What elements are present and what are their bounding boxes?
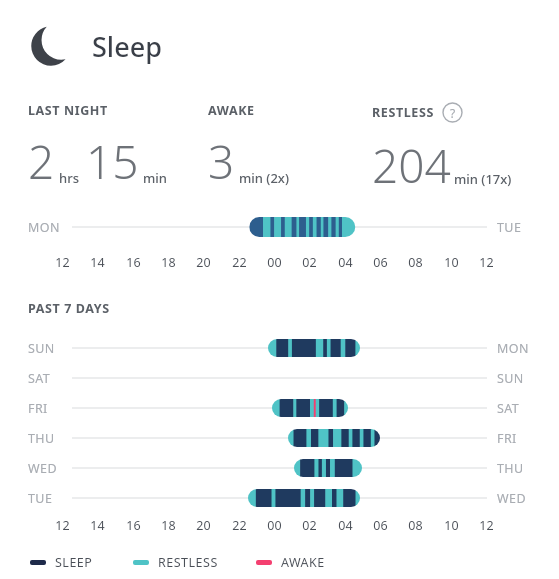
staticText: SLEEP	[55, 554, 93, 571]
staticText: 22	[232, 254, 247, 271]
staticText: 14	[90, 254, 105, 271]
staticText: SAT	[28, 370, 51, 387]
staticText: 20	[196, 517, 211, 534]
staticText: MON	[28, 219, 60, 236]
staticText: 2	[28, 130, 55, 193]
staticText: 12	[55, 517, 70, 534]
button[interactable]: MON	[0, 212, 559, 242]
staticText: min (17x)	[454, 170, 512, 188]
staticText: 10	[444, 517, 459, 534]
staticText: 16	[126, 254, 141, 271]
button[interactable]: SUN	[0, 333, 559, 363]
button[interactable]: What is restless?	[442, 102, 463, 123]
staticText: 10	[444, 254, 459, 271]
staticText: TUE	[28, 490, 53, 507]
staticText: AWAKE	[281, 554, 325, 571]
staticText: 20	[196, 254, 211, 271]
staticText: SUN	[28, 340, 55, 357]
staticText: FRI	[28, 400, 48, 417]
staticText: SAT	[497, 400, 520, 417]
button[interactable]: FRI	[0, 393, 559, 423]
staticText: 22	[232, 517, 247, 534]
staticText: 06	[373, 517, 388, 534]
staticText: RESTLESS	[158, 554, 218, 571]
button[interactable]: TUE	[0, 483, 559, 513]
button[interactable]: THU	[0, 423, 559, 453]
staticText: 04	[338, 254, 353, 271]
staticText: 06	[373, 254, 388, 271]
staticText: SUN	[497, 370, 524, 387]
staticText: RESTLESS	[372, 104, 434, 121]
staticText: TUE	[497, 219, 522, 236]
staticText: 12	[479, 254, 494, 271]
staticText: 204	[372, 134, 451, 194]
staticText: FRI	[497, 430, 517, 447]
button[interactable]: AWAKE	[256, 554, 325, 571]
staticText: 12	[55, 254, 70, 271]
staticText: THU	[497, 460, 524, 477]
staticText: ?	[450, 105, 456, 121]
button[interactable]: SLEEP	[30, 554, 93, 571]
staticText: 04	[338, 517, 353, 534]
other: Sleep	[30, 25, 72, 67]
button[interactable]: WED	[0, 453, 559, 483]
staticText: 02	[302, 517, 317, 534]
staticText: 14	[90, 517, 105, 534]
staticText: hrs	[59, 169, 79, 187]
staticText: MON	[497, 340, 529, 357]
staticText: PAST 7 DAYS	[28, 300, 110, 317]
button[interactable]: SAT	[0, 363, 559, 393]
staticText: THU	[28, 430, 55, 447]
staticText: LAST NIGHT	[28, 102, 108, 119]
staticText: 12	[479, 517, 494, 534]
staticText: 3	[208, 130, 235, 193]
staticText: min	[143, 169, 167, 187]
staticText: 08	[408, 517, 423, 534]
staticText: WED	[497, 490, 526, 507]
staticText: 18	[161, 254, 176, 271]
staticText: 16	[126, 517, 141, 534]
staticText: Sleep	[92, 28, 162, 65]
staticText: 18	[161, 517, 176, 534]
staticText: min (2x)	[239, 169, 289, 187]
staticText: 00	[267, 254, 282, 271]
staticText: AWAKE	[208, 102, 255, 119]
staticText: WED	[28, 460, 57, 477]
staticText: 08	[408, 254, 423, 271]
staticText: 15	[86, 130, 139, 193]
button[interactable]: RESTLESS	[133, 554, 218, 571]
staticText: 00	[267, 517, 282, 534]
staticText: 02	[302, 254, 317, 271]
